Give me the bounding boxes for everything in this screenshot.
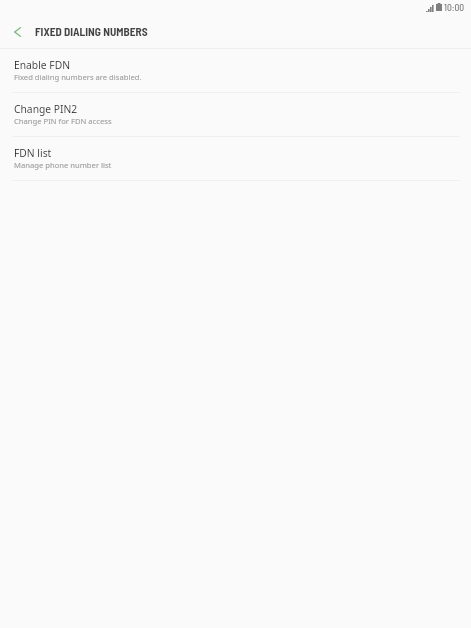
staticText: Enable FDN	[14, 58, 71, 72]
staticText: Fixed dialing numbers are disabled.	[14, 72, 142, 82]
button[interactable]: FDN list	[0, 137, 471, 180]
button[interactable]: Enable FDN	[0, 49, 471, 92]
button[interactable]: Navigate up	[0, 19, 34, 48]
staticText: FIXED DIALING NUMBERS	[35, 25, 148, 39]
staticText: Change PIN2	[14, 102, 78, 116]
staticText: Change PIN for FDN access	[14, 116, 112, 126]
staticText: 10:00	[444, 1, 465, 12]
staticText: FDN list	[14, 146, 52, 160]
button[interactable]: Change PIN2	[0, 93, 471, 136]
staticText: Manage phone number list	[14, 160, 112, 170]
